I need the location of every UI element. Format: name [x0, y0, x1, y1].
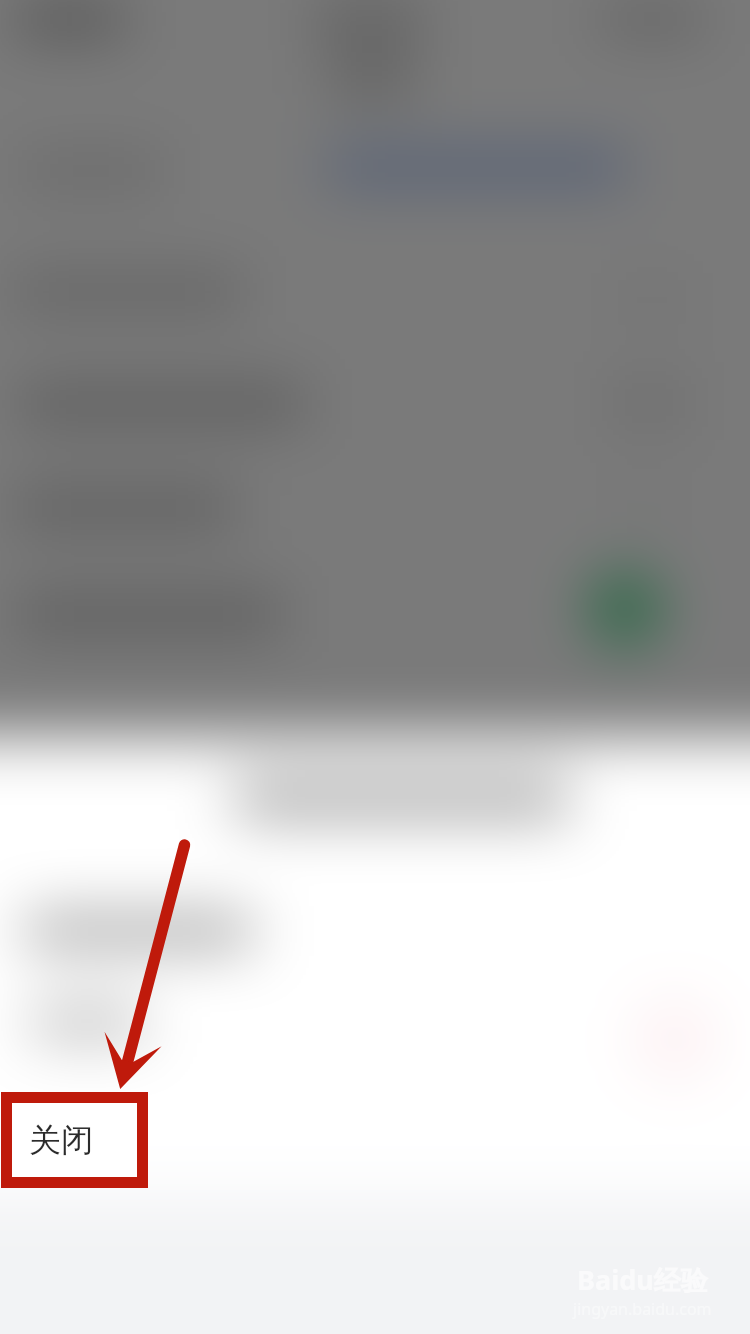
other: Pointer arrow: [0, 0, 750, 1334]
staticText: 关闭: [29, 1120, 93, 1160]
button[interactable]: 关闭: [12, 1103, 137, 1177]
staticText: Baidu经验: [577, 1261, 708, 1298]
